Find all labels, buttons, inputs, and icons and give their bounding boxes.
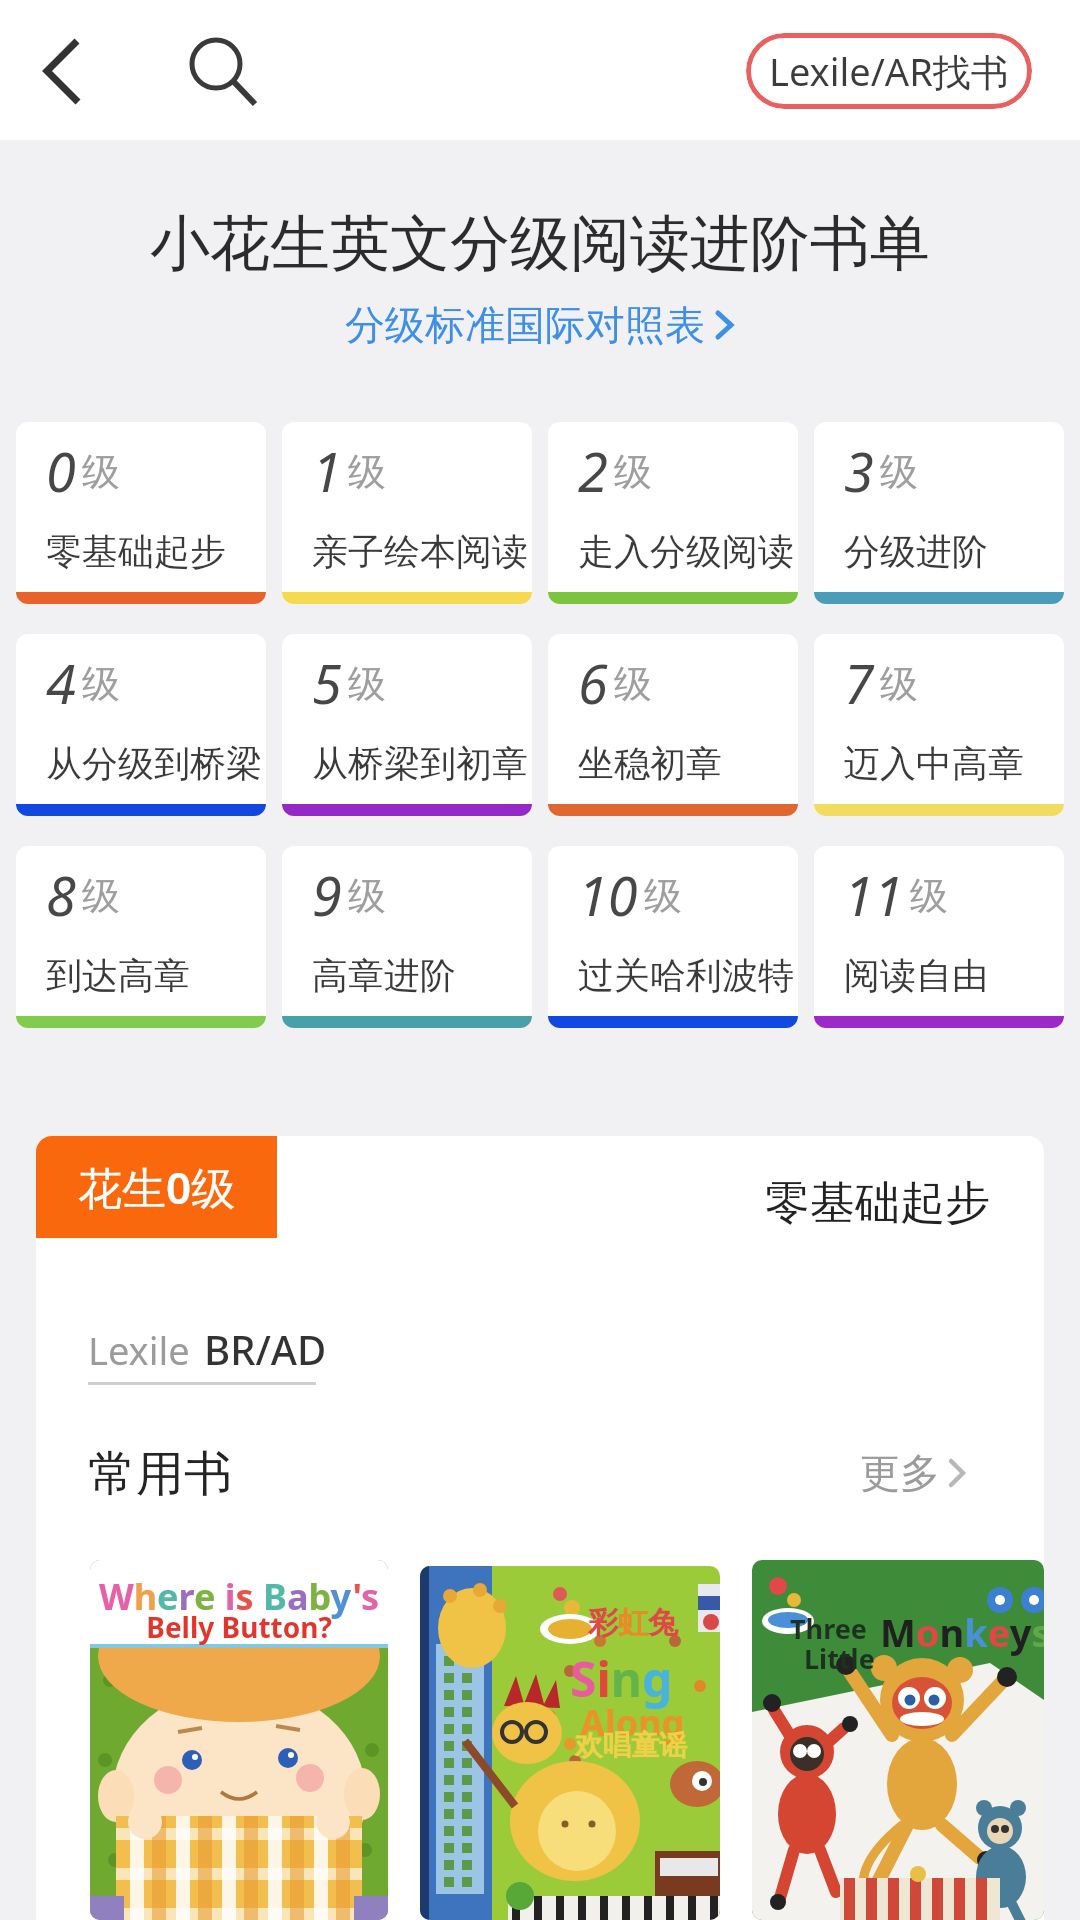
button[interactable]: 10: [548, 846, 798, 1028]
staticText: 9: [312, 858, 342, 932]
staticText: 2: [578, 434, 608, 508]
staticText: 更多: [860, 1448, 940, 1498]
staticText: 4: [46, 646, 76, 720]
staticText: 级: [880, 448, 918, 496]
staticText: 级: [880, 660, 918, 708]
staticText: Little: [804, 1640, 875, 1677]
staticText: 零基础起步: [765, 1175, 990, 1232]
staticText: 级: [348, 660, 386, 708]
staticText: Monkeys: [880, 1606, 1044, 1658]
staticText: 级: [614, 660, 652, 708]
button[interactable]: Three: [752, 1560, 1044, 1920]
button[interactable]: 花生0级: [36, 1136, 277, 1238]
staticText: 级: [910, 872, 948, 920]
button[interactable]: 分级标准国际对照表: [345, 300, 735, 350]
staticText: 0: [46, 434, 76, 508]
staticText: 小花生英文分级阅读进阶书单: [0, 206, 1080, 282]
staticText: Three: [790, 1610, 867, 1647]
button[interactable]: 11: [814, 846, 1064, 1028]
staticText: 阅读自由: [844, 953, 988, 998]
staticText: 常用书: [88, 1444, 232, 1504]
button[interactable]: 2: [548, 422, 798, 604]
staticText: Along: [580, 1698, 685, 1747]
staticText: 级: [348, 872, 386, 920]
button[interactable]: Lexile/AR找书: [746, 33, 1032, 109]
button[interactable]: 9: [282, 846, 532, 1028]
staticText: 零基础起步: [46, 529, 226, 574]
staticText: 1: [312, 434, 342, 508]
staticText: 10: [578, 858, 638, 932]
staticText: 级: [348, 448, 386, 496]
staticText: 级: [82, 660, 120, 708]
button[interactable]: 8: [16, 846, 266, 1028]
staticText: 走入分级阅读: [578, 529, 794, 574]
staticText: 级: [614, 448, 652, 496]
button[interactable]: [178, 24, 268, 118]
staticText: 欢唱童谣: [575, 1728, 687, 1763]
staticText: BR/AD: [204, 1322, 327, 1376]
button[interactable]: 7: [814, 634, 1064, 816]
staticText: 到达高章: [46, 953, 190, 998]
button[interactable]: 5: [282, 634, 532, 816]
button[interactable]: 彩虹兔: [420, 1566, 720, 1920]
staticText: Belly Button?: [90, 1608, 388, 1646]
staticText: 过关哈利波特: [578, 953, 794, 998]
staticText: 8: [46, 858, 76, 932]
staticText: 5: [312, 646, 342, 720]
staticText: 级: [644, 872, 682, 920]
staticText: 从分级到桥梁: [46, 741, 262, 786]
staticText: 高章进阶: [312, 953, 456, 998]
staticText: Lexile: [88, 1324, 190, 1376]
staticText: 分级进阶: [844, 529, 988, 574]
button[interactable]: 3: [814, 422, 1064, 604]
staticText: 6: [578, 646, 608, 720]
staticText: 分级标准国际对照表: [345, 300, 705, 350]
staticText: 坐稳初章: [578, 741, 722, 786]
staticText: 亲子绘本阅读: [312, 529, 528, 574]
staticText: Sing: [570, 1646, 673, 1711]
staticText: 3: [844, 434, 874, 508]
staticText: 从桥梁到初章: [312, 741, 528, 786]
staticText: 11: [844, 858, 904, 932]
staticText: 彩虹兔: [588, 1604, 678, 1642]
button[interactable]: [26, 24, 98, 118]
button[interactable]: Where is Baby's: [90, 1560, 388, 1920]
button[interactable]: 1: [282, 422, 532, 604]
staticText: 花生0级: [78, 1157, 236, 1217]
staticText: 7: [844, 646, 874, 720]
button[interactable]: 6: [548, 634, 798, 816]
staticText: Where is Baby's: [90, 1572, 388, 1621]
staticText: Lexile/AR找书: [769, 45, 1009, 97]
staticText: 级: [82, 448, 120, 496]
button[interactable]: 4: [16, 634, 266, 816]
staticText: 级: [82, 872, 120, 920]
staticText: 迈入中高章: [844, 741, 1024, 786]
button[interactable]: 更多: [860, 1448, 968, 1498]
button[interactable]: 0: [16, 422, 266, 604]
